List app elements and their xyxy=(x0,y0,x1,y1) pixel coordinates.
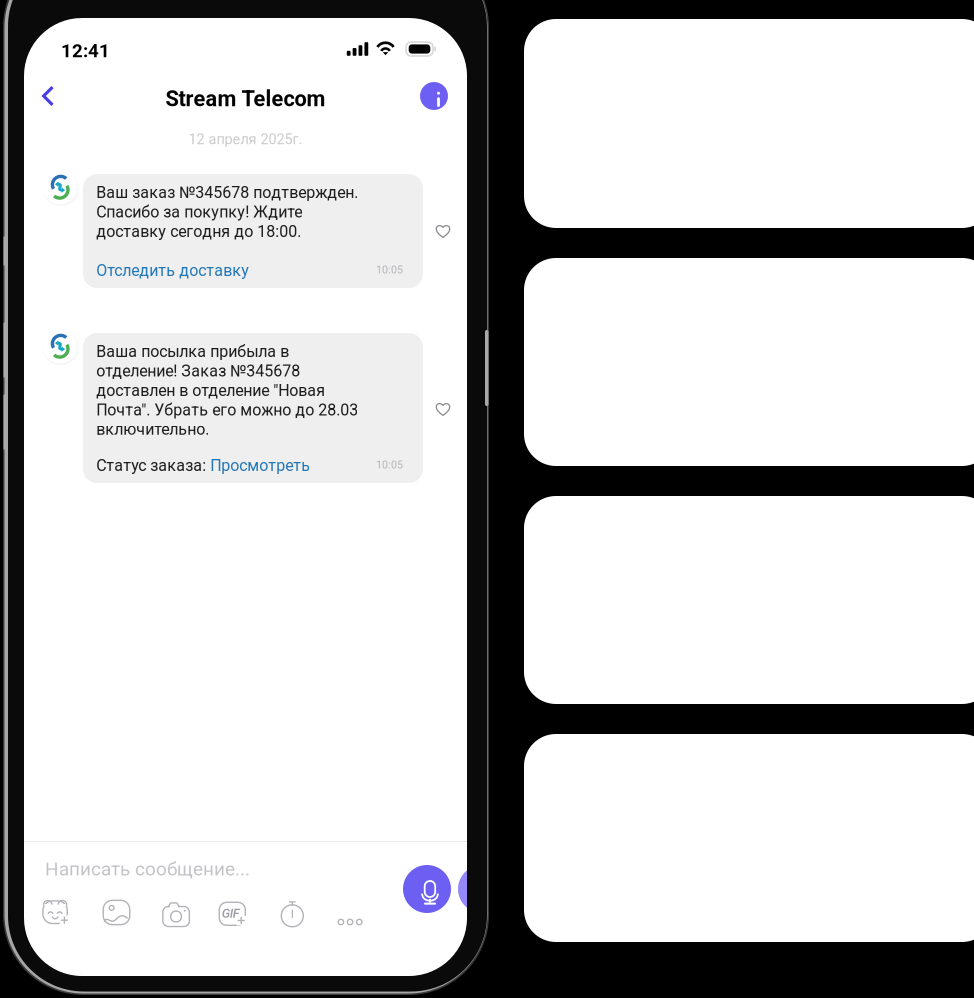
staticText: 10:05 xyxy=(376,263,403,276)
staticText: Спасибо за покупку! Ждите xyxy=(96,203,302,221)
staticText: Отследить доставку xyxy=(96,261,249,280)
staticText: Ваша посылка прибыла в xyxy=(96,342,289,361)
staticText: Просмотреть xyxy=(210,456,310,475)
button[interactable]: Like xyxy=(426,214,460,248)
button[interactable]: GIF xyxy=(219,900,246,926)
staticText: доставку сегодня до 18:00. xyxy=(96,222,301,241)
staticText: Stream Telecom xyxy=(165,86,325,111)
button[interactable]: Camera xyxy=(163,899,190,925)
button[interactable]: Voice message xyxy=(403,865,451,913)
staticText: включительно. xyxy=(96,420,209,439)
button[interactable]: Stickers xyxy=(43,900,69,926)
staticText: доставлен в отделение "Новая xyxy=(96,381,325,400)
staticText: отделение! Заказ №345678 xyxy=(96,362,300,380)
staticText: Почта". Убрать его можно до 28.03 xyxy=(96,400,358,419)
staticText: 12:41 xyxy=(61,40,110,62)
staticText: 12 апреля 2025г. xyxy=(188,131,302,148)
button[interactable]: Info xyxy=(413,74,455,118)
button[interactable]: Photo xyxy=(103,899,130,925)
staticText: Написать сообщение... xyxy=(45,858,250,880)
button[interactable]: Like xyxy=(426,392,460,426)
button[interactable]: More xyxy=(338,909,360,935)
staticText: Ваш заказ №345678 подтвержден. xyxy=(96,183,358,202)
button[interactable]: Timer xyxy=(281,899,303,925)
staticText: GIF xyxy=(222,906,240,921)
staticText: 10:05 xyxy=(376,458,403,471)
staticText: Статус заказа: xyxy=(96,456,210,475)
button[interactable]: Back xyxy=(27,74,69,118)
